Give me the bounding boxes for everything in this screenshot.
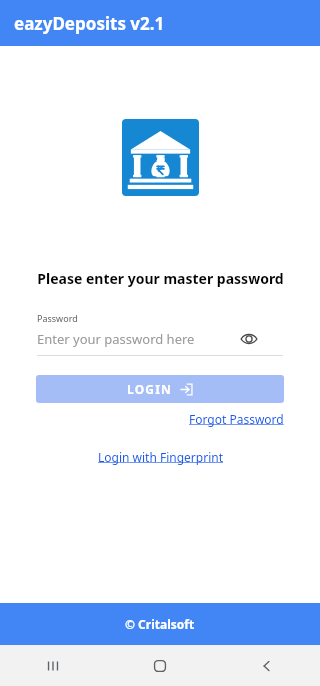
staticText: Login with Fingerprint [98, 449, 223, 465]
button[interactable]: Login with Fingerprint [98, 449, 223, 465]
button[interactable]: Forgot Password [189, 411, 284, 427]
staticText: Forgot Password [189, 411, 284, 427]
button[interactable]: Password [37, 312, 283, 356]
staticText: © Critalsoft [125, 616, 195, 632]
button[interactable]: Show password [237, 327, 261, 351]
button[interactable]: LOGIN [36, 375, 284, 403]
staticText: Please enter your master password [37, 269, 284, 288]
staticText: LOGIN [127, 381, 173, 397]
staticText: eazyDeposits v2.1 [14, 12, 165, 35]
button[interactable]: Recent apps [0, 645, 106, 686]
staticText: Enter your password here [37, 330, 237, 348]
staticText: Password [37, 312, 78, 324]
button[interactable]: Back [213, 645, 320, 686]
button[interactable]: Home [106, 645, 213, 686]
